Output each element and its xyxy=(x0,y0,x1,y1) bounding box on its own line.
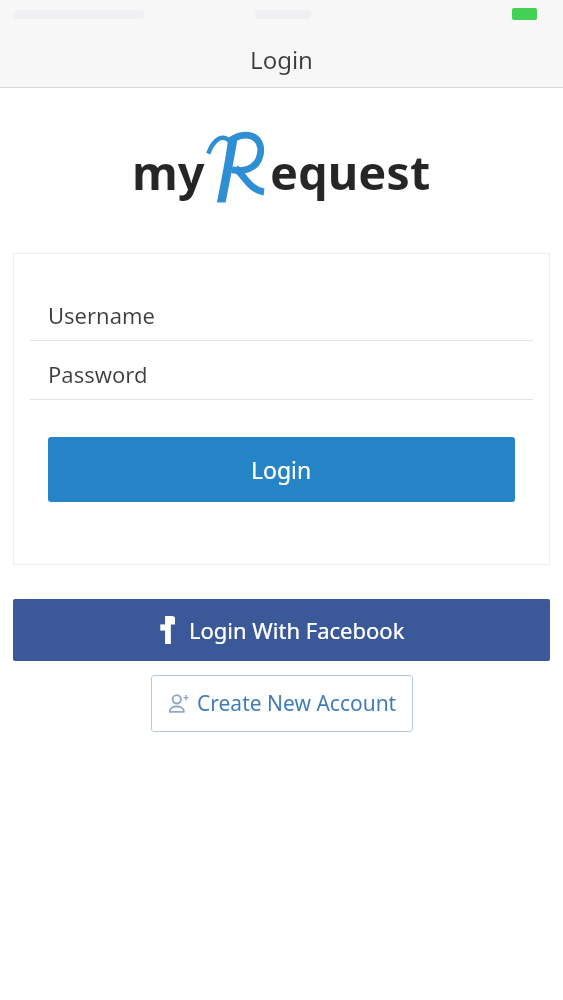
staticText: Create New Account xyxy=(197,689,397,718)
button[interactable]: Create New Account xyxy=(151,675,413,732)
button[interactable]: Username xyxy=(13,300,550,330)
staticText: Login With Facebook xyxy=(189,615,405,645)
staticText: Login xyxy=(251,454,312,485)
staticText: Login xyxy=(250,43,313,76)
button[interactable]: Password xyxy=(13,359,550,389)
staticText: Username xyxy=(48,300,156,330)
button[interactable]: Login xyxy=(48,437,515,502)
staticText: Password xyxy=(48,359,148,389)
button[interactable]: Login With Facebook xyxy=(13,599,550,661)
staticText: equest xyxy=(270,140,431,204)
staticText: my xyxy=(132,140,205,204)
